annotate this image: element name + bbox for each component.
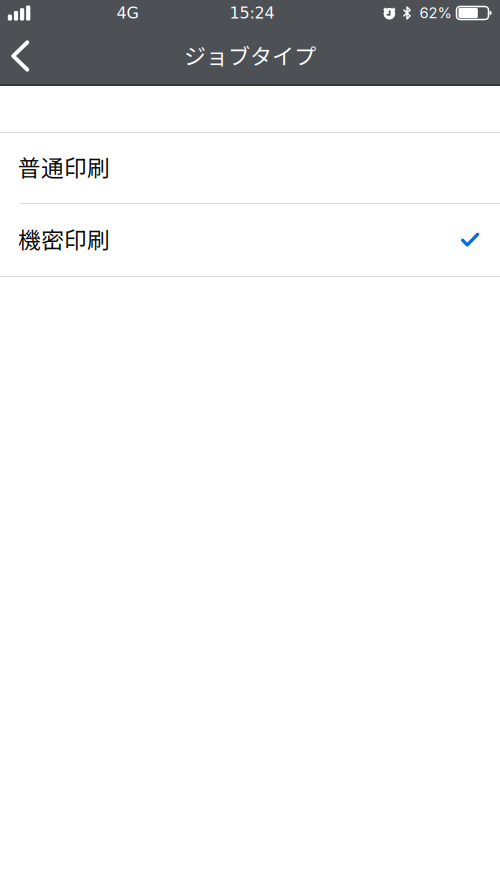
staticText: 15:24 [229, 4, 274, 22]
button[interactable]: 機密印刷 [0, 204, 500, 276]
staticText: 普通印刷 [18, 150, 110, 183]
staticText: 4G [116, 4, 138, 22]
staticText: 62% [419, 4, 451, 22]
staticText: 機密印刷 [18, 222, 110, 255]
staticText: ジョブタイプ [184, 39, 316, 71]
button[interactable]: 普通印刷 [0, 133, 500, 203]
button[interactable]: Back [0, 26, 45, 84]
